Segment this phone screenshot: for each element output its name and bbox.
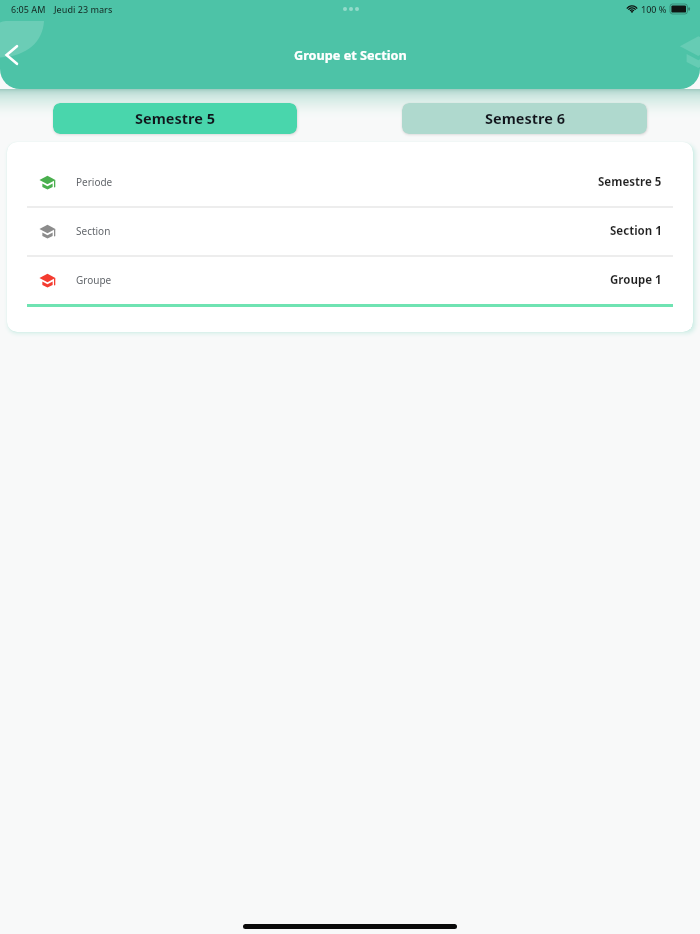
button[interactable]: Section bbox=[7, 208, 693, 255]
staticText: Section bbox=[76, 224, 111, 238]
button[interactable]: Groupe bbox=[7, 257, 693, 304]
staticText: 6:05 AM bbox=[11, 3, 46, 15]
staticText: Semestre 5 bbox=[135, 108, 215, 128]
staticText: Semestre 5 bbox=[598, 174, 662, 190]
staticText: Jeudi 23 mars bbox=[54, 3, 113, 15]
staticText: Groupe 1 bbox=[610, 272, 662, 288]
staticText: Periode bbox=[76, 175, 113, 189]
staticText: Semestre 6 bbox=[485, 108, 565, 128]
staticText: 100 % bbox=[641, 3, 667, 15]
staticText: Groupe bbox=[76, 273, 112, 287]
staticText: Groupe et Section bbox=[294, 46, 407, 63]
button[interactable]: Semestre 6 bbox=[402, 103, 647, 134]
button[interactable]: Back bbox=[0, 34, 26, 76]
staticText: Section 1 bbox=[610, 223, 662, 239]
button[interactable]: Periode bbox=[7, 159, 693, 206]
button[interactable]: Semestre 5 bbox=[53, 103, 297, 134]
